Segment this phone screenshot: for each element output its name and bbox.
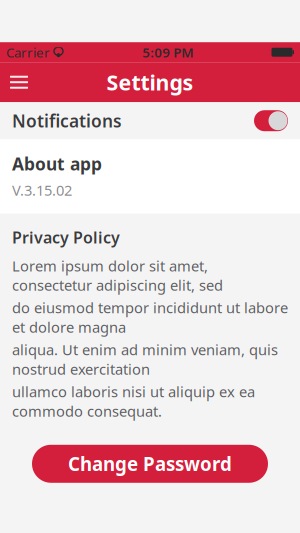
staticText: V.3.15.02: [12, 180, 72, 200]
staticText: 5:09 PM: [142, 43, 193, 61]
staticText: aliqua. Ut enim ad minim veniam, quis no…: [12, 340, 278, 379]
button[interactable]: Menu: [0, 62, 38, 102]
staticText: Notifications: [12, 109, 122, 132]
staticText: Lorem ipsum dolor sit amet, consectetur …: [12, 256, 223, 295]
button[interactable]: Change Password: [32, 445, 268, 483]
staticText: Change Password: [68, 451, 232, 476]
staticText: ullamco laboris nisi ut aliquip ex ea co…: [12, 382, 255, 421]
staticText: Settings: [106, 68, 193, 96]
staticText: do eiusmod tempor incididunt ut labore e…: [12, 298, 288, 337]
staticText: About app: [12, 152, 102, 175]
staticText: Privacy Policy: [12, 227, 120, 248]
staticText: Carrier: [6, 43, 50, 61]
button[interactable]: Notifications: [0, 102, 300, 139]
